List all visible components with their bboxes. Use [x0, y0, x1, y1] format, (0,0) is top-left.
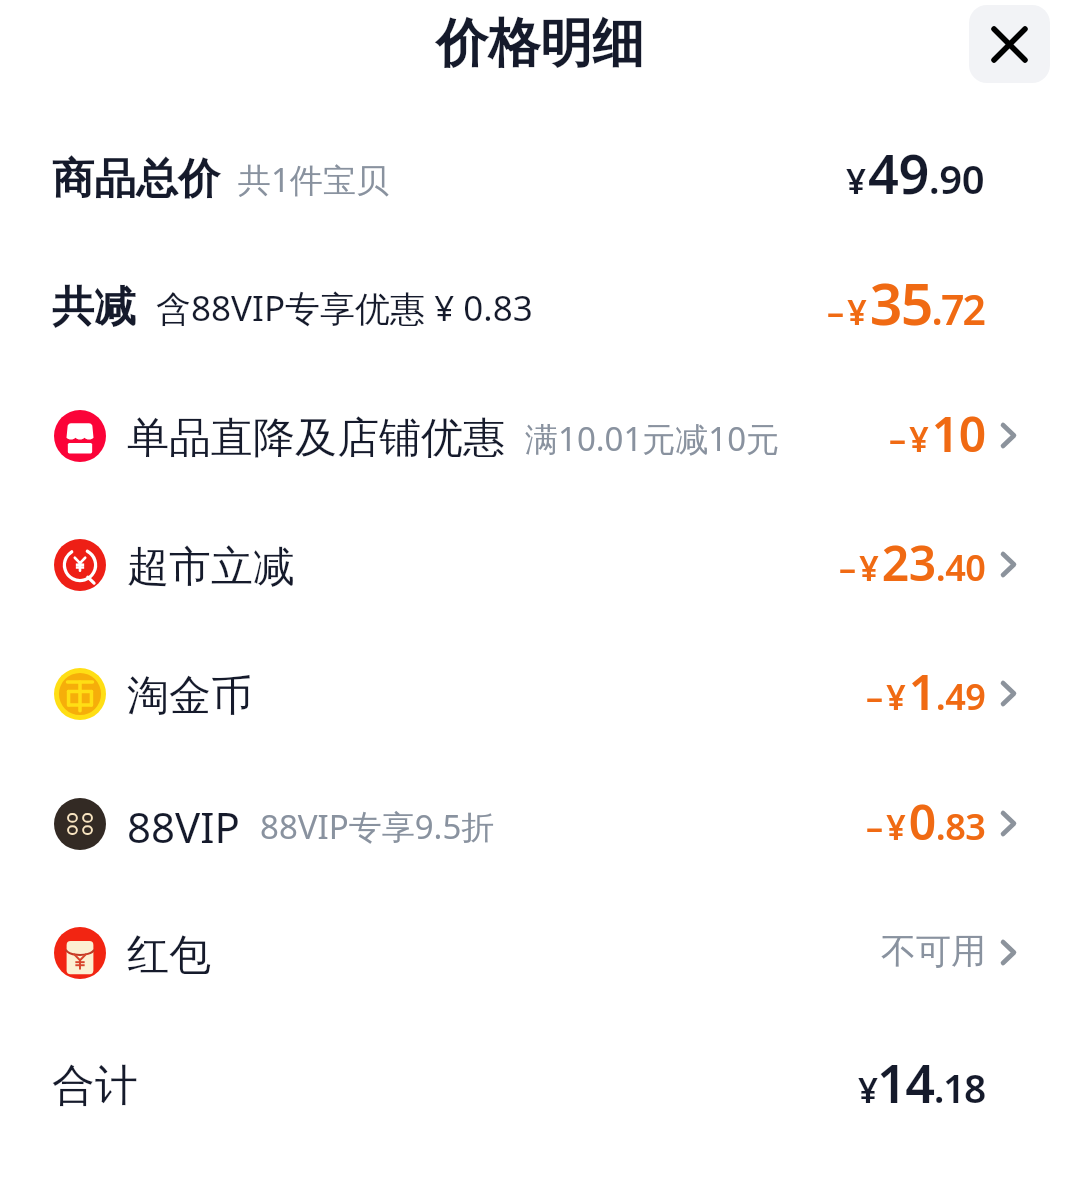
staticText: –¥23.40: [839, 530, 986, 595]
staticText: –¥1.49: [866, 659, 986, 724]
button[interactable]: Close: [969, 5, 1050, 83]
staticText: 超市立减: [127, 541, 295, 594]
staticText: ¥14.18: [858, 1047, 985, 1118]
staticText: 合计: [52, 1059, 138, 1113]
staticText: 商品总价: [52, 153, 220, 206]
staticText: 红包: [127, 929, 211, 982]
staticText: 共减: [52, 281, 136, 334]
button[interactable]: 超市立减: [0, 500, 1080, 628]
button[interactable]: 88VIP: [0, 759, 1080, 887]
staticText: 含88VIP专享优惠 ¥ 0.83: [156, 284, 533, 332]
button[interactable]: 红包: [0, 888, 1080, 1016]
staticText: –¥35.72: [827, 264, 985, 342]
button[interactable]: 单品直降及店铺优惠: [0, 371, 1080, 499]
staticText: 88VIP专享9.5折: [260, 804, 495, 849]
staticText: 不可用: [881, 929, 986, 973]
staticText: 满10.01元减10元: [525, 416, 780, 461]
staticText: –¥0.83: [866, 789, 986, 854]
staticText: ¥49.90: [846, 136, 985, 210]
staticText: 价格明细: [436, 11, 644, 77]
staticText: 88VIP: [127, 798, 240, 855]
staticText: 淘金币: [127, 670, 253, 723]
staticText: 单品直降及店铺优惠: [127, 412, 505, 465]
button[interactable]: 淘金币: [0, 629, 1080, 757]
staticText: –¥10: [889, 401, 986, 466]
staticText: 共1件宝贝: [238, 157, 389, 202]
